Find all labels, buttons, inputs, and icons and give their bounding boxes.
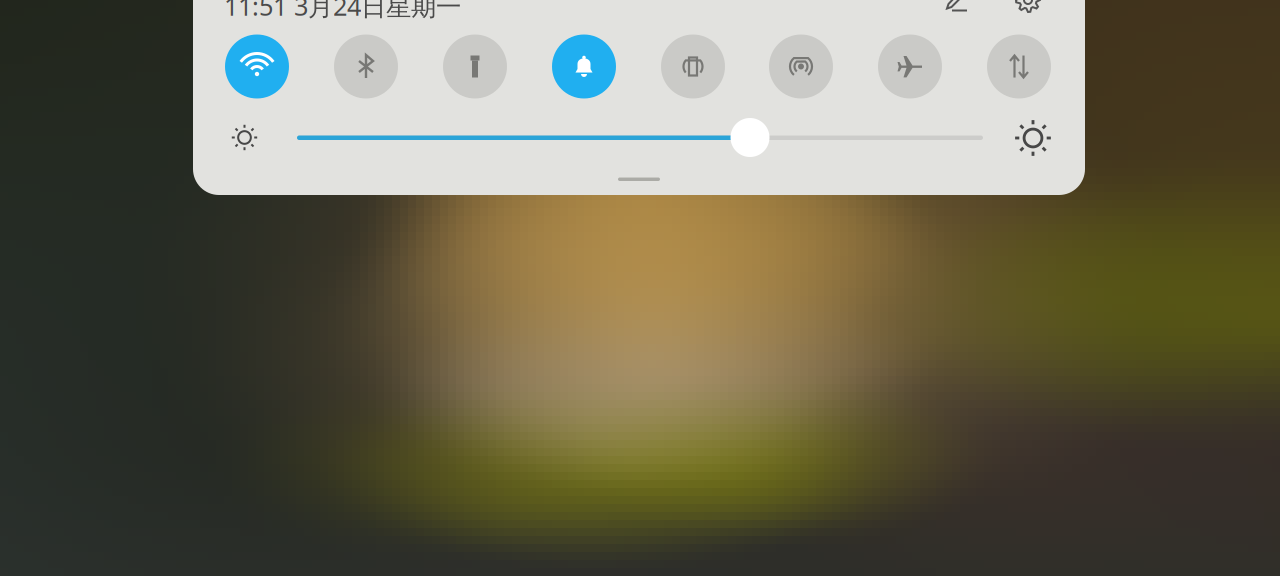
button[interactable]: Airplane mode xyxy=(878,34,942,98)
button[interactable]: Edit xyxy=(941,0,971,16)
button[interactable]: Ring xyxy=(552,34,616,98)
button[interactable]: Flashlight xyxy=(443,34,507,98)
button[interactable]: Hotspot xyxy=(769,34,833,98)
staticText: 11:51 3月24日星期一 xyxy=(224,0,461,23)
button[interactable]: Settings xyxy=(1013,0,1043,15)
button[interactable]: Bluetooth xyxy=(334,34,398,98)
button[interactable]: Mobile data xyxy=(987,34,1051,98)
button[interactable]: Vibrate xyxy=(661,34,725,98)
button[interactable]: Wi-Fi xyxy=(225,34,289,98)
